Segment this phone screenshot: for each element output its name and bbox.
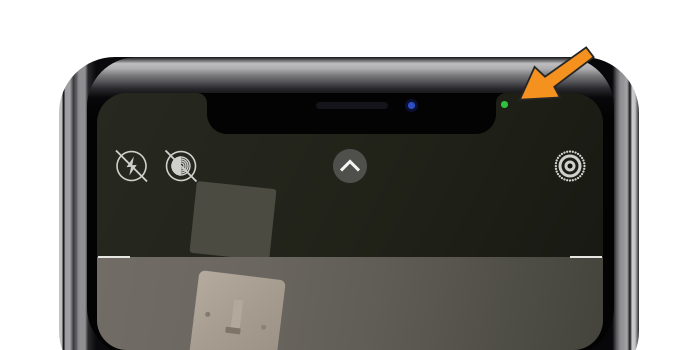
button[interactable]: Filters	[552, 148, 588, 184]
button[interactable]: More camera options	[332, 148, 368, 184]
button[interactable]: Live Photo off	[163, 148, 199, 184]
button[interactable]: Flash off	[113, 148, 149, 184]
